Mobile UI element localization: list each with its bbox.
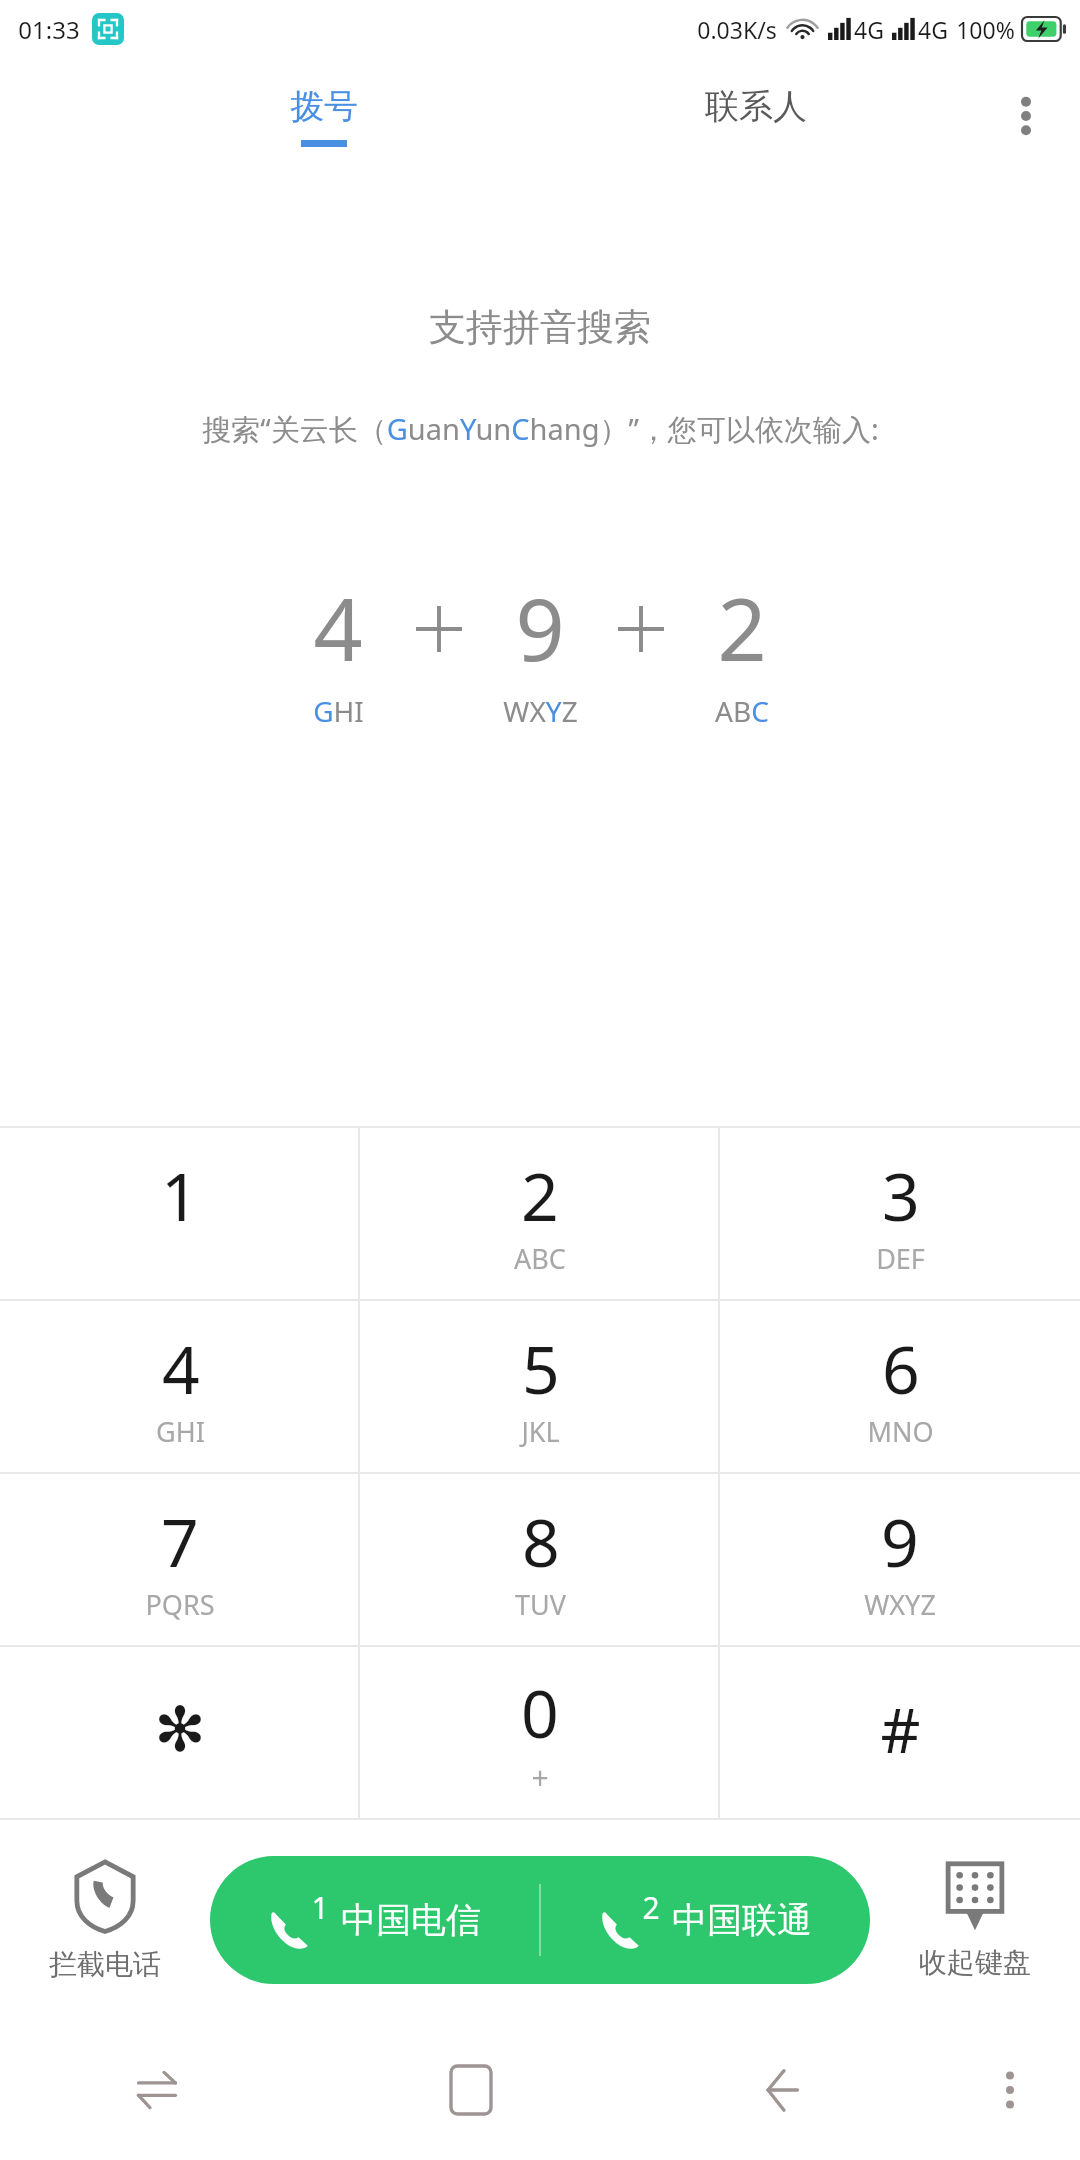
staticText: 7 xyxy=(161,1496,199,1586)
staticText: JKL xyxy=(521,1413,560,1450)
staticText: 5 xyxy=(522,1323,560,1413)
button[interactable]: 2 xyxy=(360,1128,720,1299)
button[interactable]: More options xyxy=(972,58,1080,174)
staticText: GHI xyxy=(313,692,364,730)
button[interactable]: 6 xyxy=(720,1301,1080,1472)
staticText: DEF xyxy=(876,1240,925,1277)
staticText: + xyxy=(531,1757,549,1798)
button[interactable]: 4 xyxy=(0,1301,360,1472)
staticText: # xyxy=(880,1687,921,1771)
button[interactable]: 收起键盘 xyxy=(870,1820,1080,2020)
button[interactable]: 联系人 xyxy=(540,58,972,174)
button[interactable]: 1 xyxy=(0,1128,360,1299)
button[interactable]: Recent apps xyxy=(0,2020,314,2160)
staticText: WXYZ xyxy=(864,1586,936,1623)
button[interactable]: 1 xyxy=(210,1856,539,1984)
staticText: 2 xyxy=(521,1150,559,1240)
staticText: 1 xyxy=(161,1150,199,1240)
staticText: ABC xyxy=(715,692,769,730)
staticText: 4G xyxy=(854,14,884,45)
button[interactable]: 3 xyxy=(720,1128,1080,1299)
button[interactable]: Back xyxy=(627,2020,940,2160)
button[interactable]: 7 xyxy=(0,1474,360,1645)
staticText: 3 xyxy=(882,1150,920,1240)
staticText: 联系人 xyxy=(705,85,807,128)
staticText: 支持拼音搜索 xyxy=(429,304,651,351)
button[interactable]: ✻ xyxy=(0,1647,360,1818)
staticText: 01:33 xyxy=(18,13,80,46)
button[interactable]: 8 xyxy=(360,1474,720,1645)
button[interactable]: 9 xyxy=(720,1474,1080,1645)
button[interactable]: Home xyxy=(314,2020,627,2160)
staticText: PQRS xyxy=(145,1586,215,1623)
staticText: 4 xyxy=(313,569,363,686)
staticText: 0 xyxy=(521,1667,559,1757)
staticText: 2 xyxy=(642,1887,660,1928)
button[interactable]: 拨号 xyxy=(108,58,540,174)
button[interactable]: 2 xyxy=(541,1856,870,1984)
button[interactable]: More xyxy=(940,2020,1080,2160)
staticText: 4 xyxy=(162,1323,200,1413)
staticText: ABC xyxy=(514,1240,566,1277)
staticText: 9 xyxy=(515,569,565,686)
staticText: 中国联通 xyxy=(672,1898,812,1942)
button[interactable]: 拦截电话 xyxy=(0,1820,210,2020)
staticText: 拨号 xyxy=(290,85,358,128)
staticText: 6 xyxy=(882,1323,920,1413)
button[interactable]: 0 xyxy=(360,1647,720,1818)
staticText: MNO xyxy=(867,1413,934,1450)
staticText: 中国电信 xyxy=(341,1898,481,1942)
staticText: 搜索“关云长（GuanYunChang）”，您可以依次输入: xyxy=(202,409,879,449)
button[interactable]: 5 xyxy=(360,1301,720,1472)
staticText: 8 xyxy=(522,1496,560,1586)
button[interactable]: # xyxy=(720,1647,1080,1818)
staticText: WXYZ xyxy=(503,692,578,730)
staticText: GHI xyxy=(156,1413,205,1450)
staticText: 拦截电话 xyxy=(49,1947,161,1982)
staticText: 100% xyxy=(956,14,1015,45)
staticText: 4G xyxy=(918,14,948,45)
staticText: 1 xyxy=(311,1887,329,1928)
staticText: 0.03K/s xyxy=(697,14,777,45)
staticText: TUV xyxy=(515,1586,566,1623)
staticText: 2 xyxy=(717,569,767,686)
staticText: ✻ xyxy=(154,1693,206,1765)
staticText: 9 xyxy=(881,1496,919,1586)
staticText: 收起键盘 xyxy=(919,1945,1031,1980)
